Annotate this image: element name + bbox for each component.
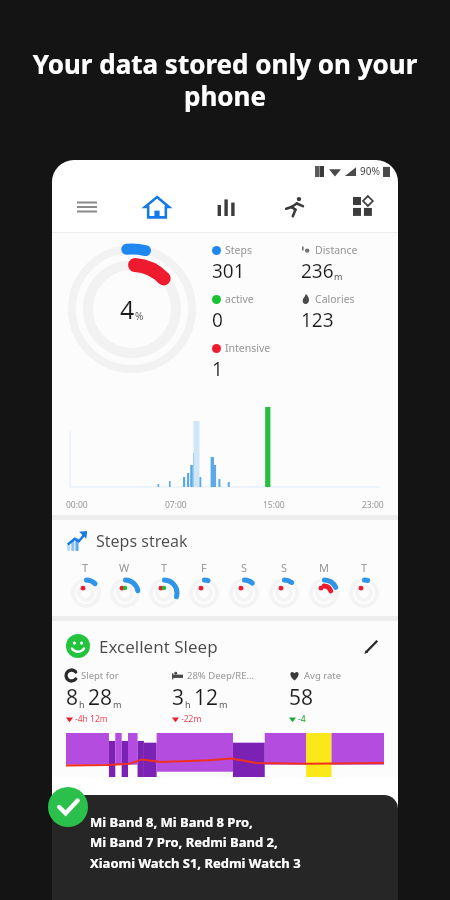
button[interactable]: Home <box>122 182 191 232</box>
staticText: M <box>319 560 329 575</box>
staticText: active <box>225 292 254 306</box>
button[interactable]: Edit <box>358 633 384 659</box>
button[interactable]: Calories <box>301 292 390 333</box>
button[interactable]: More <box>329 182 398 232</box>
staticText: 28 <box>88 683 113 712</box>
staticText: S <box>281 560 288 575</box>
button[interactable]: Steps <box>212 243 301 284</box>
staticText: W <box>119 560 130 575</box>
button[interactable]: Distance <box>301 243 390 284</box>
button[interactable]: Slept for <box>66 669 172 725</box>
staticText: -22m <box>181 713 202 725</box>
staticText: h <box>185 698 191 710</box>
staticText: T <box>82 560 89 575</box>
button[interactable]: Excellent Sleep <box>66 634 358 658</box>
staticText: T <box>161 560 168 575</box>
staticText: 00:00 <box>66 499 88 511</box>
staticText: 1 <box>212 356 223 382</box>
staticText: S <box>241 560 248 575</box>
staticText: 301 <box>212 258 245 284</box>
button[interactable]: S <box>224 560 264 608</box>
staticText: Intensive <box>225 341 271 355</box>
staticText: 28% Deep/RE... <box>187 669 255 682</box>
staticText: Steps streak <box>96 530 188 552</box>
staticText: 23:00 <box>362 499 384 511</box>
staticText: 07:00 <box>165 499 187 511</box>
staticText: 236 <box>301 258 334 284</box>
staticText: Avg rate <box>304 669 342 682</box>
button[interactable]: S <box>264 560 304 608</box>
button[interactable]: Statistics <box>191 182 260 232</box>
staticText: F <box>201 560 207 575</box>
staticText: -4 <box>298 713 306 725</box>
staticText: 15:00 <box>263 499 285 511</box>
staticText: T <box>361 560 368 575</box>
staticText: Calories <box>315 292 355 306</box>
staticText: Mi Band 8, Mi Band 8 Pro, Mi Band 7 Pro,… <box>90 813 301 872</box>
button[interactable]: W <box>105 560 144 608</box>
button[interactable]: T <box>344 560 384 608</box>
button[interactable]: Menu <box>52 182 122 232</box>
staticText: Excellent Sleep <box>99 635 218 658</box>
button[interactable]: Intensive <box>212 341 301 382</box>
button[interactable]: T <box>66 560 105 608</box>
button[interactable]: Avg rate <box>289 669 384 725</box>
button[interactable]: F <box>184 560 224 608</box>
staticText: 8 <box>66 683 79 712</box>
button[interactable]: 28% Deep/RE... <box>172 669 289 725</box>
button[interactable]: active <box>212 292 301 333</box>
staticText: Your data stored only on your phone <box>20 46 430 114</box>
button[interactable]: T <box>144 560 184 608</box>
staticText: % <box>135 309 144 323</box>
button[interactable]: Workouts <box>260 182 329 232</box>
staticText: 4 <box>120 292 135 326</box>
staticText: Slept for <box>81 669 119 682</box>
staticText: h <box>79 698 85 710</box>
staticText: 58 <box>289 683 314 712</box>
button[interactable]: M <box>304 560 344 608</box>
staticText: 3 <box>172 683 185 712</box>
staticText: 90% <box>360 164 380 178</box>
staticText: -4h 12m <box>75 713 108 725</box>
staticText: m <box>334 270 343 282</box>
button[interactable]: Steps streak <box>66 530 188 552</box>
staticText: Distance <box>315 243 358 257</box>
staticText: 123 <box>301 307 334 333</box>
staticText: Steps <box>225 243 252 257</box>
staticText: 0 <box>212 307 223 333</box>
staticText: 12 <box>194 683 219 712</box>
staticText: m <box>113 698 122 710</box>
staticText: m <box>219 698 228 710</box>
